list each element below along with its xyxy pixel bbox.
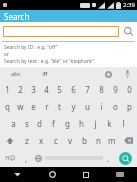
- staticText: q: [5, 101, 10, 112]
- staticText: j: [94, 118, 97, 129]
- staticText: 1: [5, 84, 10, 95]
- staticText: e: [31, 101, 36, 112]
- staticText: b: [82, 135, 87, 146]
- button[interactable]: d: [33, 115, 46, 132]
- button[interactable]: Backspace: [119, 132, 137, 149]
- staticText: or: [4, 51, 10, 58]
- staticText: 5: [57, 84, 62, 95]
- button[interactable]: 7: [80, 81, 94, 98]
- button[interactable]: l: [116, 115, 130, 132]
- button[interactable]: s: [20, 115, 33, 132]
- button[interactable]: k: [102, 115, 116, 132]
- staticText: z: [25, 135, 29, 146]
- button[interactable]: 8: [94, 81, 108, 98]
- button[interactable]: h: [74, 115, 88, 132]
- staticText: Search: [4, 11, 30, 22]
- staticText: 3: [31, 84, 36, 95]
- button[interactable]: 1: [1, 81, 14, 98]
- staticText: 2: [18, 84, 23, 95]
- staticText: g: [65, 118, 70, 129]
- staticText: h: [79, 118, 84, 129]
- staticText: ,: [25, 153, 28, 164]
- button[interactable]: Shift: [0, 132, 19, 149]
- button[interactable]: 4: [40, 81, 53, 98]
- button[interactable]: Hide keyboard: [103, 167, 137, 182]
- staticText: .: [107, 153, 110, 164]
- button[interactable]: 0: [122, 81, 136, 98]
- staticText: ?!☺: [5, 154, 16, 162]
- button[interactable]: e: [27, 98, 40, 115]
- staticText: w: [17, 101, 24, 112]
- staticText: 7: [85, 84, 90, 95]
- staticText: l: [122, 118, 125, 129]
- button[interactable]: Space: [45, 155, 103, 161]
- button[interactable]: x: [34, 132, 49, 149]
- button[interactable]: अ: [32, 67, 58, 81]
- button[interactable]: i: [94, 98, 108, 115]
- staticText: अ: [42, 69, 48, 79]
- button[interactable]: ?!☺: [0, 149, 21, 167]
- button[interactable]: 6: [66, 81, 80, 98]
- button[interactable]: p: [122, 98, 136, 115]
- button[interactable]: w: [14, 98, 27, 115]
- staticText: v: [68, 135, 73, 146]
- staticText: 9: [113, 84, 118, 95]
- staticText: u: [85, 101, 90, 112]
- staticText: abc: [11, 70, 21, 78]
- button[interactable]: 5: [53, 81, 66, 98]
- button[interactable]: u: [80, 98, 94, 115]
- button[interactable]: Back: [0, 167, 35, 182]
- button[interactable]: Home: [35, 167, 69, 182]
- staticText: i: [100, 101, 103, 112]
- staticText: Search by ID : e.g. "off": [4, 44, 58, 51]
- button[interactable]: .: [103, 149, 114, 167]
- staticText: t: [58, 101, 61, 112]
- staticText: f: [52, 118, 55, 129]
- button[interactable]: ,: [21, 149, 32, 167]
- button[interactable]: 3: [27, 81, 40, 98]
- button[interactable]: m: [105, 132, 119, 149]
- staticText: 2:39: [123, 1, 135, 9]
- button[interactable]: o: [108, 98, 122, 115]
- staticText: n: [96, 135, 101, 146]
- button[interactable]: 9: [108, 81, 122, 98]
- staticText: s: [25, 118, 29, 129]
- button[interactable]: f: [46, 115, 60, 132]
- staticText: o: [113, 101, 118, 112]
- staticText: r: [45, 101, 49, 112]
- button[interactable]: Search: [121, 24, 135, 38]
- staticText: x: [39, 135, 44, 146]
- button[interactable]: n: [91, 132, 105, 149]
- button[interactable]: Search: [114, 149, 137, 167]
- button[interactable]: Voice input: [120, 67, 134, 81]
- button[interactable]: Change language: [32, 149, 45, 167]
- staticText: k: [107, 118, 112, 129]
- button[interactable]: a: [7, 115, 20, 132]
- staticText: 0: [127, 84, 132, 95]
- button[interactable]: r: [40, 98, 53, 115]
- button[interactable]: y: [66, 98, 80, 115]
- button[interactable]: Recents: [69, 167, 103, 182]
- button[interactable]: 2: [14, 81, 27, 98]
- staticText: c: [54, 135, 58, 146]
- staticText: 6: [71, 84, 76, 95]
- button[interactable]: q: [1, 98, 14, 115]
- button[interactable]: Keyboard settings: [101, 67, 115, 81]
- staticText: a: [11, 118, 16, 129]
- staticText: Search by text : e.g. "ele" or "elephant…: [4, 58, 94, 65]
- button[interactable]: abc: [0, 67, 32, 81]
- button[interactable]: j: [88, 115, 102, 132]
- staticText: m: [108, 135, 116, 146]
- button[interactable]: t: [53, 98, 66, 115]
- staticText: 4: [44, 84, 49, 95]
- staticText: y: [71, 101, 76, 112]
- button[interactable]: z: [19, 132, 34, 149]
- staticText: 8: [99, 84, 104, 95]
- staticText: d: [37, 118, 42, 129]
- button[interactable]: b: [77, 132, 91, 149]
- staticText: p: [127, 101, 132, 112]
- button[interactable]: g: [60, 115, 74, 132]
- button[interactable]: v: [63, 132, 77, 149]
- button[interactable]: Search input: [3, 26, 119, 37]
- button[interactable]: c: [49, 132, 63, 149]
